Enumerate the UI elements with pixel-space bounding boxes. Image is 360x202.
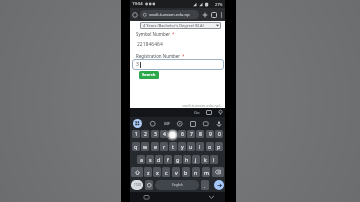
button[interactable]: o [206, 142, 214, 151]
staticText: soult.tuexam.edu.np/... [182, 103, 224, 108]
button[interactable] [214, 180, 224, 190]
staticText: 9 [209, 131, 212, 138]
staticText: g [176, 156, 180, 163]
button[interactable] [206, 110, 212, 115]
button[interactable]: m [202, 167, 210, 177]
staticText: s [149, 156, 152, 163]
staticText: h [185, 156, 189, 163]
button[interactable]: s [146, 155, 154, 164]
button[interactable]: soult.tuexam.edu.np [140, 10, 199, 19]
button[interactable]: 4 [160, 130, 168, 138]
button[interactable] [132, 12, 138, 18]
staticText: 221846464 [137, 41, 163, 48]
button[interactable]: r [160, 142, 168, 151]
button[interactable]: 3 [132, 59, 224, 70]
button[interactable]: 0 [215, 130, 223, 138]
button[interactable]: 8 [196, 130, 204, 138]
staticText: 19:54 [132, 1, 143, 7]
staticText: o [208, 143, 212, 150]
staticText: 0 [218, 131, 221, 138]
button[interactable]: d [155, 155, 163, 164]
button[interactable]: GIF [164, 121, 170, 126]
button[interactable]: 3 [151, 130, 159, 138]
staticText: t [172, 143, 174, 150]
button[interactable] [203, 121, 209, 127]
button[interactable] [150, 121, 156, 127]
staticText: p [217, 143, 221, 150]
staticText: Registration Number [136, 53, 182, 59]
button[interactable]: z [144, 167, 152, 177]
button[interactable]: b [182, 167, 190, 177]
staticText: Search [142, 72, 156, 78]
staticText: soult.tuexam.edu.np [149, 12, 190, 18]
button[interactable]: j [192, 155, 200, 164]
button[interactable]: c [162, 167, 170, 177]
staticText: a [140, 156, 143, 163]
button[interactable] [177, 121, 183, 127]
staticText: Symbol Number [136, 31, 172, 37]
button[interactable]: 5 [169, 130, 177, 138]
button[interactable]: 4 Years (Bachelor's Degree) (B.A) [140, 22, 221, 29]
button[interactable] [218, 110, 223, 115]
button[interactable]: English [155, 180, 199, 190]
button[interactable]: Search [139, 71, 159, 79]
staticText: l [213, 156, 215, 163]
button[interactable]: 1 [132, 130, 140, 138]
staticText: 5 [172, 131, 175, 138]
button[interactable]: ?123 [131, 180, 143, 190]
staticText: GIF [164, 121, 170, 126]
button[interactable]: l [210, 155, 218, 164]
button[interactable]: w [141, 142, 149, 151]
button[interactable]: i [196, 142, 204, 151]
button[interactable]: a [137, 155, 145, 164]
staticText: ?123 [134, 183, 141, 187]
button[interactable]: e [151, 142, 159, 151]
button[interactable] [145, 180, 153, 190]
staticText: v [175, 169, 178, 176]
button[interactable]: t [169, 142, 177, 151]
button[interactable]: q [132, 142, 140, 151]
staticText: c [165, 169, 168, 176]
staticText: i [199, 143, 201, 150]
button[interactable]: 2 [141, 130, 149, 138]
button[interactable]: h [183, 155, 191, 164]
button[interactable]: v [172, 167, 180, 177]
staticText: * [182, 53, 185, 59]
button[interactable]: x [153, 167, 161, 177]
staticText: y [181, 143, 184, 150]
button[interactable]: n [192, 167, 200, 177]
staticText: x [156, 169, 159, 176]
button[interactable]: Go [194, 110, 200, 116]
staticText: 3 [136, 61, 139, 68]
button[interactable]: g [174, 155, 182, 164]
button[interactable] [190, 121, 196, 127]
button[interactable] [216, 121, 222, 127]
staticText: 7 [190, 131, 193, 138]
button[interactable]: p [215, 142, 223, 151]
staticText: z [147, 169, 150, 176]
button[interactable]: u [187, 142, 195, 151]
button[interactable]: 7 [187, 130, 195, 138]
staticText: e [154, 143, 157, 150]
staticText: 3 [154, 131, 157, 138]
staticText: m [204, 169, 209, 176]
button[interactable]: 9 [206, 130, 214, 138]
button[interactable] [220, 12, 223, 18]
staticText: 4 Years (Bachelor's Degree) (B.A) [143, 23, 204, 28]
staticText: 4 [163, 131, 166, 138]
button[interactable]: k [201, 155, 209, 164]
button[interactable] [202, 12, 208, 18]
staticText: u [189, 143, 193, 150]
staticText: * [172, 31, 175, 37]
button[interactable] [211, 12, 217, 18]
button[interactable] [212, 167, 224, 177]
button[interactable] [133, 119, 142, 128]
staticText: r [163, 143, 166, 150]
button[interactable] [131, 167, 143, 177]
staticText: 27% [215, 2, 223, 7]
staticText: . [204, 182, 206, 189]
button[interactable]: . [201, 180, 209, 190]
button[interactable]: f [164, 155, 172, 164]
button[interactable]: 6 [178, 130, 186, 138]
button[interactable]: y [178, 142, 186, 151]
